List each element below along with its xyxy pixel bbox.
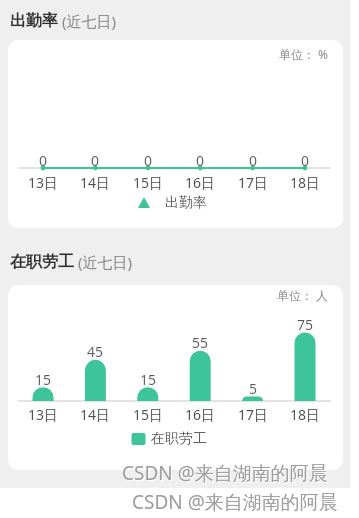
staticText: 单位： 人 bbox=[277, 287, 329, 303]
staticText: (近七日) bbox=[58, 11, 116, 31]
staticText: 出勤率 bbox=[10, 11, 58, 31]
staticText: 17日 bbox=[238, 173, 269, 192]
staticText: 75 bbox=[297, 315, 314, 334]
staticText: 55 bbox=[192, 333, 209, 352]
staticText: 5 bbox=[249, 379, 258, 398]
staticText: 0 bbox=[301, 151, 310, 170]
staticText: 15日 bbox=[133, 173, 164, 192]
staticText: 15 bbox=[140, 370, 157, 389]
staticText: 15日 bbox=[133, 405, 164, 424]
staticText: CSDN @来自湖南的阿晨 bbox=[132, 489, 338, 515]
staticText: CSDN @来自湖南的阿晨 bbox=[123, 461, 329, 487]
staticText: 16日 bbox=[185, 173, 216, 192]
staticText: CSDN @来自湖南的阿晨 bbox=[133, 490, 339, 516]
staticText: 0 bbox=[249, 151, 258, 170]
staticText: (近七日) bbox=[74, 252, 132, 272]
staticText: 在职劳工 bbox=[151, 430, 207, 448]
staticText: 0 bbox=[91, 151, 100, 170]
staticText: 单位： % bbox=[279, 46, 329, 62]
button[interactable]: 出勤率 bbox=[165, 193, 240, 213]
staticText: 0 bbox=[144, 151, 153, 170]
staticText: 13日 bbox=[28, 405, 59, 424]
staticText: 14日 bbox=[80, 173, 111, 192]
staticText: 在职劳工 bbox=[10, 252, 74, 272]
staticText: 18日 bbox=[290, 173, 321, 192]
staticText: 45 bbox=[87, 342, 104, 361]
staticText: 出勤率 bbox=[165, 194, 207, 212]
staticText: 13日 bbox=[28, 173, 59, 192]
staticText: 17日 bbox=[238, 405, 269, 424]
staticText: CSDN @来自湖南的阿晨 bbox=[122, 460, 328, 486]
staticText: 0 bbox=[196, 151, 205, 170]
button[interactable]: 在职劳工 bbox=[151, 429, 226, 449]
staticText: 15 bbox=[35, 370, 52, 389]
staticText: 18日 bbox=[290, 405, 321, 424]
staticText: 14日 bbox=[80, 405, 111, 424]
staticText: 0 bbox=[39, 151, 48, 170]
staticText: 16日 bbox=[185, 405, 216, 424]
